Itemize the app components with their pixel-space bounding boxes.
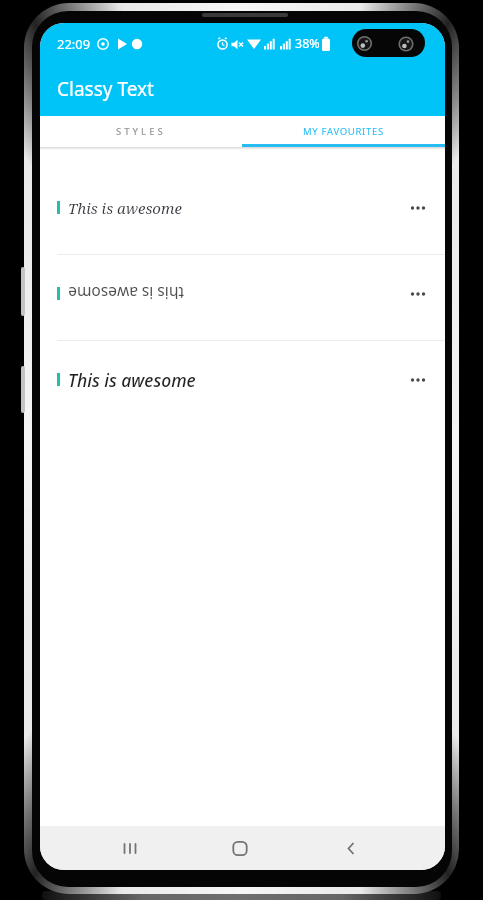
button[interactable] <box>403 279 427 309</box>
button[interactable] <box>403 365 427 395</box>
button[interactable] <box>403 193 427 223</box>
staticText: Classy Text <box>57 76 154 102</box>
staticText: STYLES <box>116 125 166 138</box>
button[interactable] <box>175 826 310 870</box>
button[interactable]: MY FAVOURITES <box>242 116 445 147</box>
button[interactable] <box>310 826 445 870</box>
button[interactable]: This is awesome <box>40 165 445 250</box>
staticText: 22:09 <box>57 35 91 53</box>
button[interactable]: this is awesome <box>40 251 445 336</box>
button[interactable]: STYLES <box>40 116 242 147</box>
button[interactable] <box>40 826 175 870</box>
staticText: This is awesome <box>68 368 196 392</box>
staticText: MY FAVOURITES <box>303 125 384 138</box>
button[interactable]: This is awesome <box>40 337 445 422</box>
staticText: this is awesome <box>68 283 184 304</box>
staticText: This is awesome <box>68 198 182 218</box>
staticText: 38% <box>295 35 320 52</box>
